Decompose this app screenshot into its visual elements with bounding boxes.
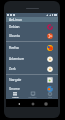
staticText: Desktop (28, 96, 37, 99)
staticText: Install (12, 96, 19, 99)
staticText: Zork (9, 67, 16, 71)
button[interactable]: Recents (44, 102, 47, 105)
button[interactable]: Adventure (6, 53, 58, 64)
other: Install (13, 92, 17, 96)
button[interactable]: Firefox (6, 42, 58, 53)
button[interactable]: Gnome (6, 85, 58, 92)
other: Info (48, 92, 52, 96)
staticText: Firefox (9, 46, 19, 50)
button[interactable]: Home (31, 102, 34, 105)
button[interactable]: Desktop (24, 92, 41, 99)
button[interactable]: Info (41, 92, 58, 99)
staticText: Stargate (9, 78, 22, 82)
staticText: Debian (9, 25, 20, 29)
button[interactable]: AnLinux (6, 17, 58, 22)
staticText: Ubuntu (9, 34, 21, 38)
staticText: Gnome (9, 87, 20, 91)
staticText: Info (48, 96, 52, 99)
button[interactable]: Zork (6, 64, 58, 74)
other: Desktop (31, 92, 35, 96)
button[interactable]: Stargate (6, 75, 58, 85)
staticText: AnLinux (9, 17, 22, 22)
button[interactable]: Back (17, 102, 20, 105)
button[interactable]: Ubuntu (6, 31, 58, 41)
button[interactable]: Debian (6, 22, 58, 31)
staticText: Adventure (9, 57, 25, 61)
button[interactable]: Install (6, 92, 24, 99)
